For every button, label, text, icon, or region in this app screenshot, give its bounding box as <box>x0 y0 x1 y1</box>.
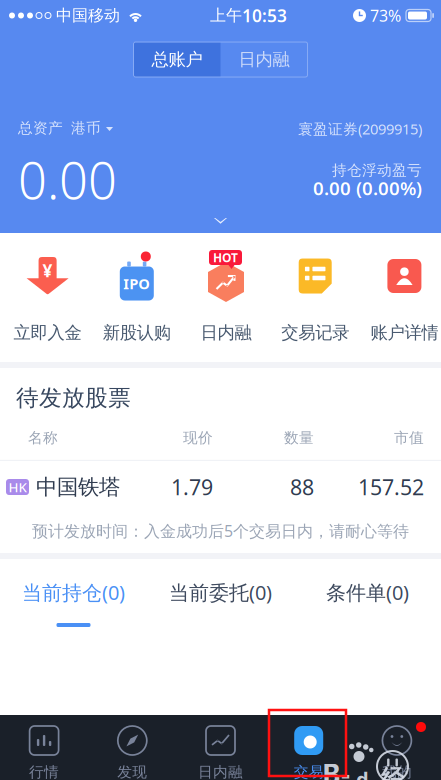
button[interactable]: 当前持仓(0) <box>0 559 147 631</box>
staticText: 寰盈证券(2099915) <box>298 119 422 138</box>
staticText: 交易记录 <box>281 322 349 343</box>
staticText: 总资产 港币 <box>18 119 101 137</box>
button[interactable]: 日内融 <box>176 715 265 780</box>
staticText: 数量 <box>284 429 314 447</box>
staticText: 10:53 <box>242 4 287 27</box>
button[interactable]: 发现 <box>88 715 176 780</box>
staticText: IPO <box>123 274 150 293</box>
staticText: 0.00 <box>18 146 117 213</box>
button[interactable]: 交易记录 <box>271 247 360 343</box>
button[interactable]: 日内融 <box>220 42 307 77</box>
button[interactable]: 总账户 <box>133 42 220 77</box>
staticText: 我的 <box>382 763 412 780</box>
staticText: 行情 <box>29 763 59 780</box>
staticText: du <box>356 766 375 780</box>
staticText: 账户详情 <box>370 322 438 343</box>
staticText: 1.79 <box>171 473 213 501</box>
staticText: 日内融 <box>238 49 289 70</box>
button[interactable]: 我的 <box>353 715 441 780</box>
staticText: 当前持仓(0) <box>22 579 125 606</box>
staticText: 立即入金 <box>14 322 82 343</box>
staticText: HOT <box>213 249 238 265</box>
button[interactable]: HOT <box>181 247 271 343</box>
staticText: 预计发放时间：入金成功后5个交易日内，请耐心等待 <box>32 520 409 541</box>
staticText: ¥ <box>43 259 53 282</box>
staticText: 条件单(0) <box>326 579 409 606</box>
button[interactable]: 交易 <box>265 715 353 780</box>
staticText: 持仓浮动盈亏 <box>332 161 422 179</box>
button[interactable]: 当前委托(0) <box>147 559 294 631</box>
staticText: 总账户 <box>151 49 202 70</box>
staticText: 73% <box>370 5 401 26</box>
button[interactable]: ¥ <box>3 247 92 343</box>
staticText: HK <box>8 478 26 496</box>
staticText: 经验 <box>381 764 404 780</box>
button[interactable]: 条件单(0) <box>294 559 441 631</box>
staticText: 待发放股票 <box>16 384 131 412</box>
staticText: Bai <box>322 755 350 780</box>
staticText: 发现 <box>117 763 147 780</box>
staticText: 现价 <box>183 429 213 447</box>
staticText: jingyan.baidu.com <box>324 775 411 780</box>
staticText: 名称 <box>28 429 58 447</box>
button[interactable]: 行情 <box>0 715 88 780</box>
staticText: 当前委托(0) <box>169 579 272 606</box>
staticText: 88 <box>290 473 314 501</box>
staticText: 交易 <box>294 763 324 780</box>
staticText: 中国铁塔 <box>36 474 120 500</box>
staticText: 上午 <box>210 6 242 25</box>
staticText: 新股认购 <box>103 322 171 343</box>
staticText: 日内融 <box>200 322 251 343</box>
staticText: 市值 <box>394 429 424 447</box>
staticText: 中国移动 <box>56 6 120 25</box>
staticText: 0.00 (0.00%) <box>313 175 422 200</box>
button[interactable]: 账户详情 <box>360 247 441 343</box>
staticText: 157.52 <box>358 473 424 501</box>
staticText: 日内融 <box>198 763 243 780</box>
button[interactable]: IPO <box>92 247 181 343</box>
